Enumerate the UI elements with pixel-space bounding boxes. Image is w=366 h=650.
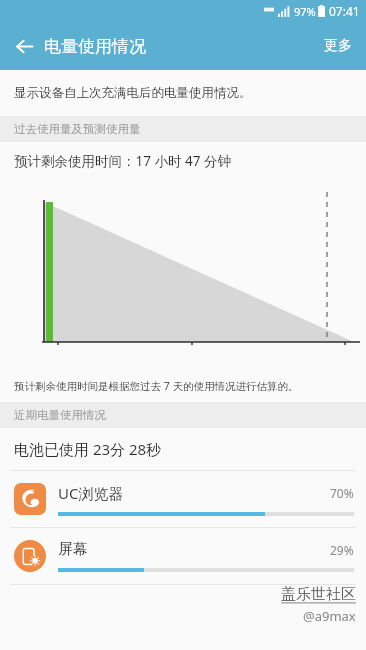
staticText: 70% <box>330 485 354 501</box>
staticText: 过去使用量及预测使用量 <box>14 122 141 136</box>
staticText: 07:41 <box>329 3 360 19</box>
button[interactable]: 更多 <box>310 25 366 67</box>
staticText: @a9max <box>303 607 356 625</box>
button[interactable]: UC浏览器 <box>0 471 366 527</box>
staticText: 电量使用情况 <box>44 36 146 57</box>
staticText: 29% <box>330 542 354 558</box>
staticText: 显示设备自上次充满电后的电量使用情况。 <box>14 85 252 101</box>
staticText: 预计剩余使用时间是根据您过去 7 天的使用情况进行估算的。 <box>14 379 299 393</box>
staticText: 预计剩余使用时间：17 小时 47 分钟 <box>14 152 231 170</box>
button[interactable]: 屏幕 <box>0 528 366 584</box>
staticText: 更多 <box>324 37 352 55</box>
staticText: 盖乐世社区 <box>281 585 356 604</box>
staticText: UC浏览器 <box>58 483 330 503</box>
staticText: 近期电量使用情况 <box>14 408 106 422</box>
button[interactable]: Back <box>0 22 48 70</box>
staticText: 97% <box>294 4 316 19</box>
staticText: 屏幕 <box>58 540 330 559</box>
staticText: 电池已使用 23分 28秒 <box>14 439 162 459</box>
